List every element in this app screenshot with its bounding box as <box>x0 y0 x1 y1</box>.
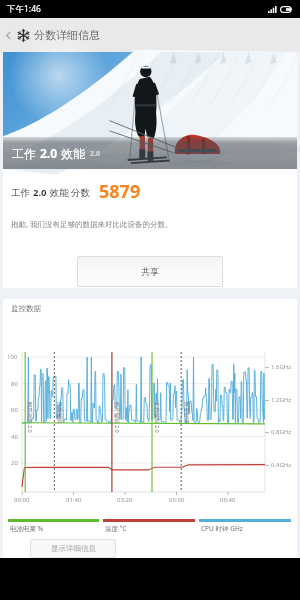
staticText: 60 <box>11 406 18 414</box>
staticText: 电池电量 % <box>10 524 44 533</box>
staticText: 40 <box>11 433 18 441</box>
staticText: 03:20 <box>117 496 133 504</box>
staticText: 视频编辑 <box>55 401 62 423</box>
staticText: 2.0 <box>40 145 58 161</box>
button[interactable]: Back <box>0 18 17 52</box>
staticText: 5879 <box>99 179 141 204</box>
staticText: 下午1:46 <box>7 3 41 15</box>
staticText: 温度 °C <box>105 524 127 533</box>
staticText: 2.0 <box>90 149 100 159</box>
staticText: 00:00 <box>14 496 30 504</box>
staticText: 05:00 <box>169 496 185 504</box>
button[interactable]: 显示详细信息 <box>30 539 116 558</box>
staticText: 工作 <box>11 186 33 199</box>
staticText: 100 <box>7 353 18 361</box>
staticText: 1.2GHz <box>271 396 292 404</box>
staticText: 抱歉, 我们没有足够的数据来对比此设备的分数。 <box>11 219 173 229</box>
staticText: 20 <box>11 459 18 467</box>
staticText: 照片编辑 2.0 <box>112 401 120 433</box>
staticText: 共享 <box>141 266 159 277</box>
staticText: 效能 <box>58 145 86 161</box>
button[interactable]: 共享 <box>77 256 223 287</box>
staticText: 06:40 <box>220 496 236 504</box>
staticText: 显示详细信息 <box>51 544 96 553</box>
staticText: 效能 分数 <box>47 186 90 199</box>
staticText: 数据处理 <box>182 401 189 423</box>
staticText: 网页浏览 2.0 <box>25 401 33 433</box>
staticText: 工作 <box>12 145 40 161</box>
staticText: 监控数据 <box>11 304 41 313</box>
staticText: 1.6GHz <box>271 363 292 371</box>
staticText: 0.4GHz <box>271 461 292 469</box>
staticText: 0.8GHz <box>271 428 292 436</box>
staticText: CPU 时钟 GHz <box>201 524 243 533</box>
staticText: 01:40 <box>66 496 82 504</box>
staticText: 分数详细信息 <box>34 28 100 42</box>
staticText: 2.0 <box>33 186 47 199</box>
staticText: 文档编辑 2.0 <box>152 401 160 433</box>
staticText: 80 <box>11 380 18 388</box>
